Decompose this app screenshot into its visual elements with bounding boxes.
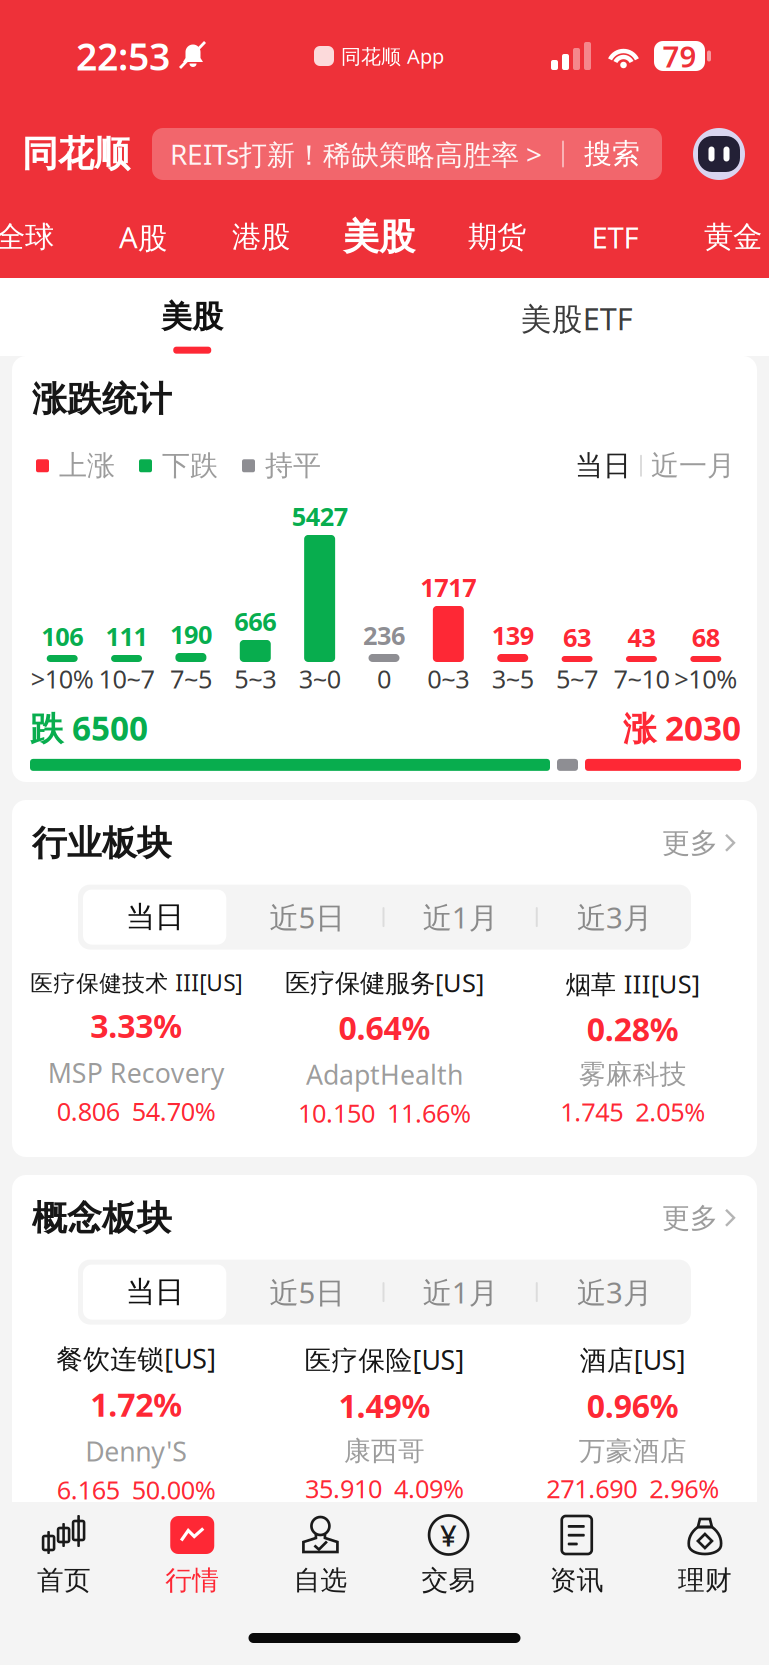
button[interactable]: 更多 xyxy=(662,826,737,860)
staticText: 搜索 xyxy=(584,137,640,171)
button[interactable]: 港股 xyxy=(202,196,320,278)
staticText: 2.96% xyxy=(649,1472,719,1505)
staticText: 0.96% xyxy=(587,1384,679,1427)
button[interactable]: 近5日 xyxy=(231,1260,382,1325)
staticText: 0.806 xyxy=(57,1094,120,1128)
staticText: 10~7 xyxy=(98,662,154,696)
button[interactable]: 医疗保健服务[US] xyxy=(260,966,509,1130)
staticText: 涨跌统计 xyxy=(32,378,172,421)
staticText: 3~0 xyxy=(299,662,341,696)
button[interactable]: REITs打新！稀缺策略高胜率 > xyxy=(152,128,662,180)
staticText: 当日 xyxy=(575,449,631,483)
staticText: ETF xyxy=(591,217,638,256)
button[interactable]: 近3月 xyxy=(538,1260,691,1325)
button[interactable]: 近1月 xyxy=(384,885,536,950)
staticText: 跌 6500 xyxy=(30,706,148,750)
staticText: 106 xyxy=(41,619,83,653)
staticText: 首页 xyxy=(37,1564,91,1597)
staticText: 更多 xyxy=(662,826,718,860)
staticText: 持平 xyxy=(265,449,321,483)
staticText: >10% xyxy=(31,662,94,696)
button[interactable]: 美股 xyxy=(320,196,438,278)
staticText: 236 xyxy=(363,618,405,652)
staticText: 6.165 xyxy=(57,1473,120,1506)
staticText: 美股 xyxy=(343,215,415,259)
staticText: 35.910 xyxy=(305,1472,382,1505)
staticText: 全球 xyxy=(0,219,54,255)
staticText: 1.745 xyxy=(560,1095,623,1128)
staticText: A股 xyxy=(119,217,167,256)
staticText: 2.05% xyxy=(635,1095,705,1128)
staticText: 医疗保险[US] xyxy=(304,1342,464,1377)
staticText: 11.66% xyxy=(387,1096,471,1130)
staticText: 涨 2030 xyxy=(623,706,741,750)
button[interactable]: 更多 xyxy=(662,1201,737,1235)
staticText: 68 xyxy=(692,620,720,654)
button[interactable]: 近5日 xyxy=(231,885,382,950)
button[interactable]: A股 xyxy=(84,196,202,278)
staticText: 近5日 xyxy=(269,1273,344,1312)
staticText: 3~5 xyxy=(492,662,534,696)
staticText: 自选 xyxy=(293,1564,347,1597)
staticText: 近5日 xyxy=(269,898,344,937)
button[interactable]: 美股ETF xyxy=(384,278,769,356)
staticText: 111 xyxy=(105,619,147,653)
staticText: 5~7 xyxy=(556,662,598,696)
button[interactable]: 酒店[US] xyxy=(509,1342,757,1505)
button[interactable]: 近3月 xyxy=(538,885,691,950)
staticText: 医疗保健技术 III[US] xyxy=(30,967,242,997)
button[interactable]: 近一月 xyxy=(651,449,735,483)
staticText: 0.64% xyxy=(338,1006,430,1049)
button[interactable]: 期货 xyxy=(438,196,556,278)
button[interactable]: 行情 xyxy=(128,1502,256,1607)
staticText: 同花顺 App xyxy=(341,43,444,69)
button[interactable]: 资讯 xyxy=(513,1502,641,1607)
staticText: 7~5 xyxy=(170,662,212,696)
button[interactable]: ¥ xyxy=(384,1502,513,1607)
staticText: 近3月 xyxy=(577,898,652,937)
staticText: 1.72% xyxy=(90,1383,182,1425)
staticText: 更多 xyxy=(662,1201,718,1235)
button[interactable]: 近1月 xyxy=(384,1260,536,1325)
button[interactable]: 当日 xyxy=(78,885,231,950)
staticText: 7~10 xyxy=(613,662,669,696)
button[interactable]: 餐饮连锁[US] xyxy=(12,1341,260,1507)
staticText: 近一月 xyxy=(651,449,735,483)
staticText: 5427 xyxy=(292,499,348,533)
button[interactable]: 美股 xyxy=(0,278,384,356)
staticText: 50.00% xyxy=(132,1473,216,1506)
staticText: 139 xyxy=(492,618,534,652)
staticText: 10.150 xyxy=(298,1096,375,1130)
button[interactable]: 医疗保险[US] xyxy=(260,1342,509,1505)
staticText: 理财 xyxy=(678,1564,732,1597)
staticText: 万豪酒店 xyxy=(579,1435,687,1468)
button[interactable]: 黄金 xyxy=(674,196,769,278)
staticText: 近3月 xyxy=(577,1273,652,1312)
staticText: 1.49% xyxy=(338,1384,430,1427)
button[interactable]: 当日 xyxy=(575,449,631,483)
button[interactable]: AI 助手 xyxy=(691,126,747,182)
staticText: 行情 xyxy=(165,1564,219,1597)
staticText: 63 xyxy=(563,620,591,654)
staticText: 当日 xyxy=(126,1274,184,1310)
staticText: AdaptHealth xyxy=(306,1057,463,1092)
staticText: 酒店[US] xyxy=(580,1342,686,1377)
staticText: 22:53 xyxy=(76,31,170,81)
staticText: >10% xyxy=(674,662,737,696)
button[interactable]: ETF xyxy=(556,196,674,278)
button[interactable]: 自选 xyxy=(256,1502,384,1607)
button[interactable]: 当日 xyxy=(78,1260,231,1325)
staticText: 下跌 xyxy=(162,449,218,483)
staticText: 港股 xyxy=(232,219,290,255)
button[interactable]: 首页 xyxy=(0,1502,128,1607)
button[interactable]: 全球 xyxy=(0,196,84,278)
staticText: 271.690 xyxy=(546,1472,637,1505)
button[interactable]: 医疗保健技术 III[US] xyxy=(12,967,260,1128)
staticText: 190 xyxy=(170,617,212,651)
staticText: 近1月 xyxy=(423,898,498,937)
button[interactable]: 烟草 III[US] xyxy=(509,967,757,1128)
staticText: 餐饮连锁[US] xyxy=(56,1341,216,1376)
button[interactable]: 理财 xyxy=(641,1502,769,1607)
staticText: Denny'S xyxy=(85,1433,187,1469)
staticText: 康西哥 xyxy=(344,1435,425,1468)
